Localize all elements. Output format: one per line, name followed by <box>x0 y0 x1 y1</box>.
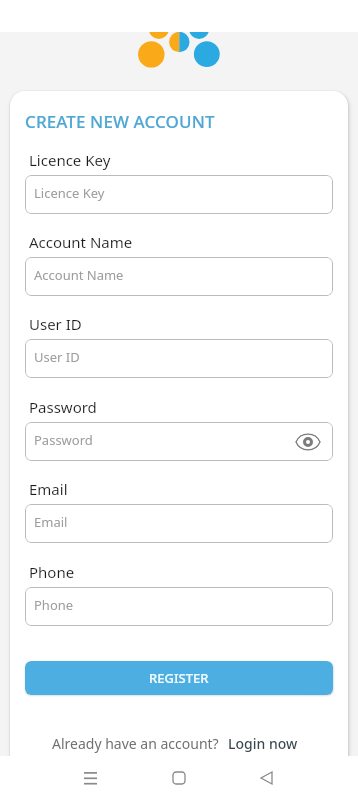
staticText: Account Name <box>29 232 133 252</box>
button[interactable]: User ID <box>25 339 333 378</box>
staticText: Already have an account? <box>52 734 219 753</box>
button[interactable]: Back <box>244 756 288 800</box>
button[interactable]: Login now <box>228 734 298 753</box>
button[interactable]: Licence Key <box>25 175 333 214</box>
staticText: Licence Key <box>34 184 105 202</box>
staticText: Login now <box>228 734 298 753</box>
staticText: Email <box>29 479 68 499</box>
staticText: User ID <box>34 348 80 366</box>
staticText: Licence Key <box>29 150 111 170</box>
staticText: Password <box>34 431 93 449</box>
button[interactable]: Phone <box>25 587 333 626</box>
staticText: Email <box>34 513 68 531</box>
staticText: Phone <box>29 562 75 582</box>
button[interactable]: Show password <box>293 427 323 457</box>
button[interactable]: Recent apps <box>68 756 112 800</box>
staticText: REGISTER <box>149 669 209 687</box>
staticText: CREATE NEW ACCOUNT <box>25 110 215 133</box>
staticText: User ID <box>29 314 82 334</box>
button[interactable]: Home <box>157 756 201 800</box>
staticText: Password <box>29 397 97 417</box>
button[interactable]: Email <box>25 504 333 543</box>
button[interactable]: REGISTER <box>25 661 333 695</box>
button[interactable]: Password <box>25 422 333 461</box>
staticText: Account Name <box>34 266 124 284</box>
staticText: Phone <box>34 596 74 614</box>
button[interactable]: Account Name <box>25 257 333 296</box>
